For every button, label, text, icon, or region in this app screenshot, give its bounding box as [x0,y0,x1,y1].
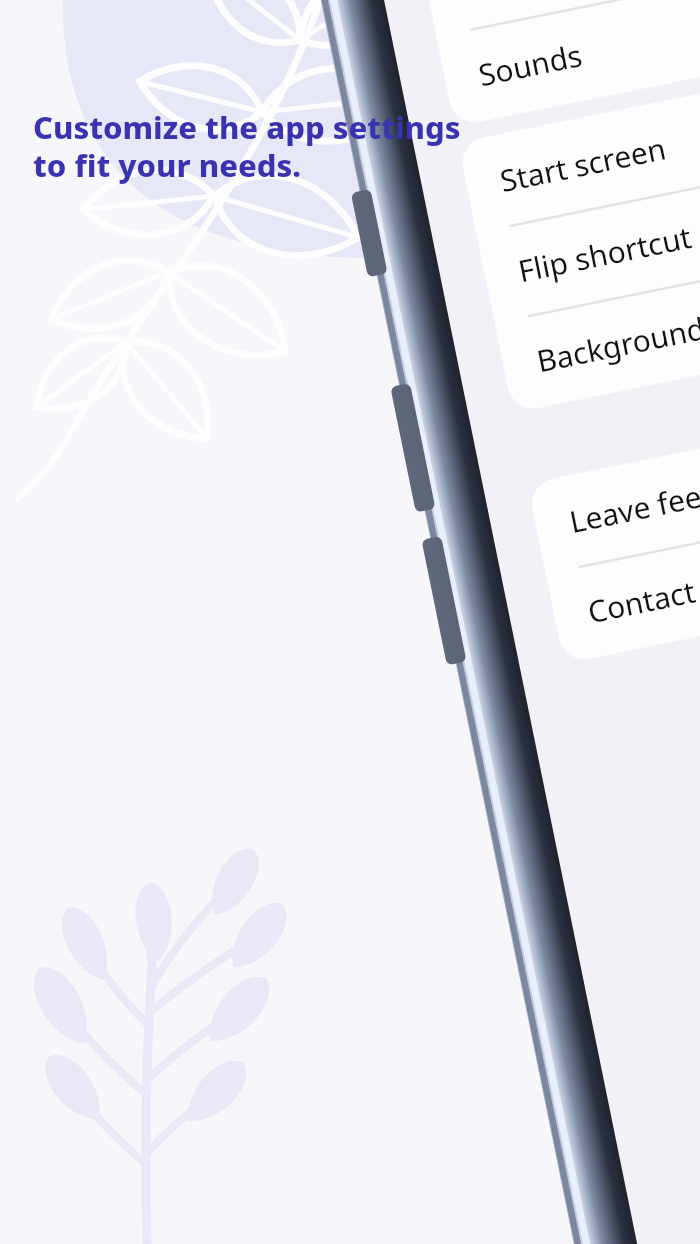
button[interactable]: App settings promotional screen [0,0,700,1244]
